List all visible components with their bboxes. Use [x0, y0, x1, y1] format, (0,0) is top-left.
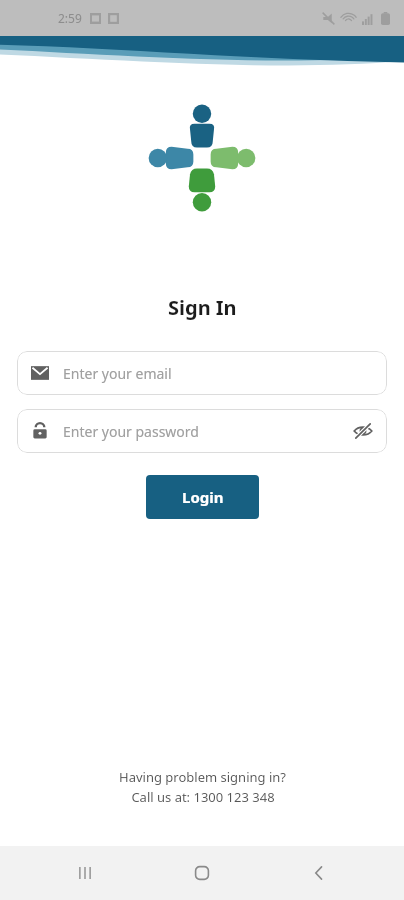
button[interactable]: Login — [146, 475, 259, 519]
staticText: Enter your password — [63, 422, 353, 441]
button[interactable]: Home — [170, 846, 234, 900]
staticText: Sign In — [168, 294, 237, 321]
button[interactable]: Recents — [53, 846, 117, 900]
button[interactable]: Show password — [353, 421, 373, 441]
staticText: Login — [182, 487, 224, 507]
button[interactable]: Having problem signing in? — [119, 768, 286, 806]
other: Email — [31, 364, 49, 382]
button[interactable]: Password — [17, 409, 387, 453]
button[interactable]: Email — [17, 351, 387, 395]
other: Password — [31, 422, 49, 440]
staticText: 2:59 — [58, 10, 82, 26]
button[interactable]: Back — [287, 846, 351, 900]
staticText: Call us at: 1300 123 348 — [131, 788, 275, 806]
staticText: Enter your email — [63, 364, 373, 383]
staticText: Having problem signing in? — [119, 768, 286, 786]
